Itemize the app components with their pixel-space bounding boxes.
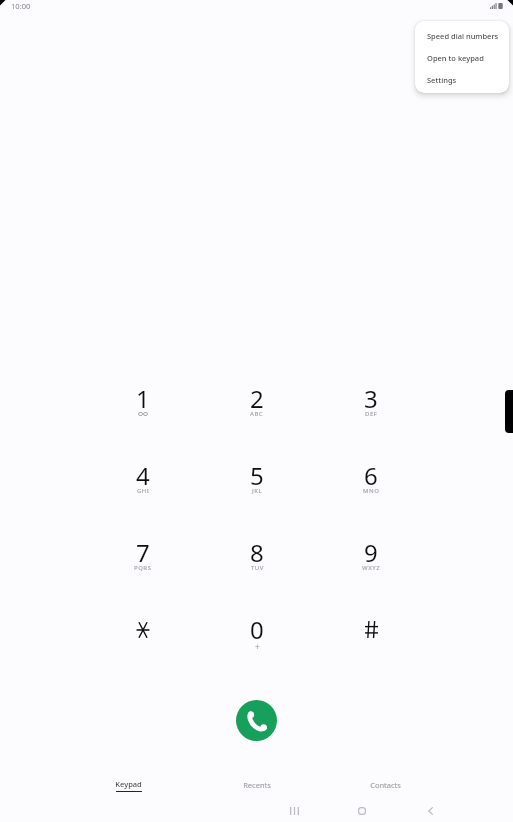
staticText: Keypad bbox=[115, 779, 142, 789]
staticText: 3 bbox=[364, 382, 378, 415]
staticText: TUV bbox=[251, 564, 264, 572]
staticText: ABC bbox=[250, 410, 264, 418]
staticText: + bbox=[255, 641, 260, 652]
staticText: Settings bbox=[427, 75, 457, 85]
button[interactable]: Home bbox=[338, 799, 386, 822]
button[interactable]: Speed dial numbers bbox=[415, 25, 509, 47]
button[interactable]: Keypad bbox=[64, 770, 193, 800]
button[interactable]: 2 bbox=[200, 360, 314, 437]
button[interactable]: 0 bbox=[200, 591, 314, 668]
staticText: DEF bbox=[365, 410, 378, 418]
button[interactable]: 4 bbox=[86, 437, 200, 514]
staticText: WXYZ bbox=[362, 564, 381, 572]
staticText: PQRS bbox=[134, 564, 152, 572]
button[interactable]: * bbox=[86, 591, 200, 668]
button[interactable]: 9 bbox=[314, 514, 428, 591]
button[interactable]: Back bbox=[406, 799, 454, 822]
button[interactable]: 5 bbox=[200, 437, 314, 514]
button[interactable]: Settings bbox=[415, 69, 509, 91]
staticText: 6 bbox=[364, 459, 378, 492]
staticText: Recents bbox=[243, 780, 271, 790]
button[interactable]: Call bbox=[236, 700, 277, 741]
staticText: 5 bbox=[250, 459, 264, 492]
button[interactable]: 3 bbox=[314, 360, 428, 437]
button[interactable]: 1 bbox=[86, 360, 200, 437]
button[interactable]: Recents bbox=[193, 770, 321, 800]
staticText: Speed dial numbers bbox=[427, 31, 499, 41]
staticText: Contacts bbox=[370, 780, 401, 790]
button[interactable]: 6 bbox=[314, 437, 428, 514]
button[interactable]: Open to keypad bbox=[415, 47, 509, 69]
button[interactable]: Recent apps bbox=[270, 799, 318, 822]
button[interactable]: Edge panel handle bbox=[505, 390, 513, 433]
staticText: 2 bbox=[250, 382, 264, 415]
staticText: MNO bbox=[363, 487, 380, 495]
button[interactable]: 8 bbox=[200, 514, 314, 591]
staticText: 10:00 bbox=[11, 1, 31, 11]
staticText: 7 bbox=[136, 536, 150, 569]
staticText: JKL bbox=[252, 487, 263, 495]
staticText: 8 bbox=[250, 536, 264, 569]
staticText: 9 bbox=[364, 536, 378, 569]
staticText: 4 bbox=[136, 459, 150, 492]
staticText: 1 bbox=[136, 382, 150, 415]
button[interactable]: # bbox=[314, 591, 428, 668]
button[interactable]: 7 bbox=[86, 514, 200, 591]
button[interactable]: Contacts bbox=[321, 770, 449, 800]
staticText: 0 bbox=[250, 613, 264, 646]
staticText: GHI bbox=[137, 487, 150, 495]
staticText: Open to keypad bbox=[427, 53, 484, 63]
